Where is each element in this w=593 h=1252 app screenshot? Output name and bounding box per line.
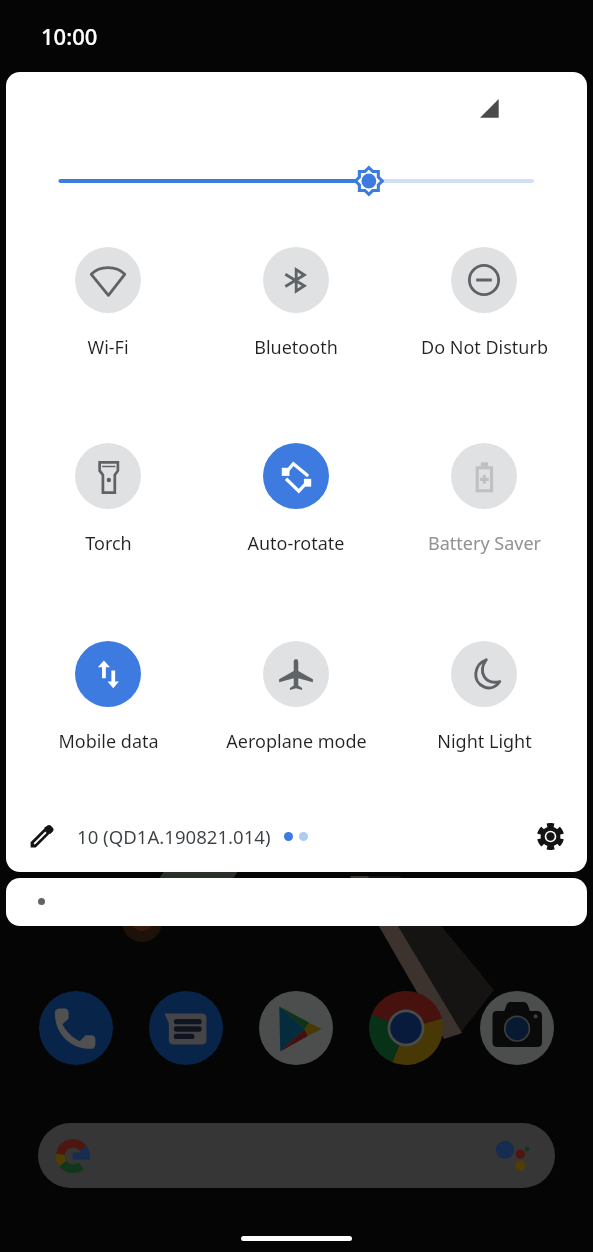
- button[interactable]: Mobile data: [15, 641, 201, 754]
- button[interactable]: Do Not Disturb: [391, 247, 577, 360]
- button[interactable]: [6, 878, 587, 926]
- staticText: Wi-Fi: [87, 335, 129, 360]
- other: Signal strength: [480, 99, 499, 118]
- staticText: Bluetooth: [254, 335, 338, 360]
- button[interactable]: Bluetooth: [203, 247, 389, 360]
- staticText: Battery Saver: [428, 531, 541, 556]
- staticText: Torch: [85, 531, 132, 556]
- button[interactable]: Auto-rotate: [203, 443, 389, 556]
- button[interactable]: Battery Saver: [391, 443, 577, 556]
- button[interactable]: Chrome: [369, 991, 443, 1065]
- button[interactable]: Aeroplane mode: [203, 641, 389, 754]
- staticText: Mobile data: [58, 729, 159, 754]
- staticText: Aeroplane mode: [226, 729, 367, 754]
- button[interactable]: Edit tiles: [20, 814, 64, 858]
- button[interactable]: Torch: [15, 443, 201, 556]
- button[interactable]: Settings: [528, 814, 572, 858]
- staticText: Do Not Disturb: [421, 335, 548, 360]
- button[interactable]: Phone: [39, 991, 113, 1065]
- button[interactable]: Camera: [480, 991, 554, 1065]
- button[interactable]: Messages: [149, 991, 223, 1065]
- staticText: 10 (QD1A.190821.014): [77, 824, 271, 849]
- button[interactable]: Wi-Fi: [15, 247, 201, 360]
- button[interactable]: Night Light: [391, 641, 577, 754]
- button[interactable]: Search: [38, 1123, 555, 1188]
- staticText: Auto-rotate: [247, 531, 345, 556]
- button[interactable]: Brightness: [40, 161, 552, 201]
- staticText: 10:00: [41, 21, 98, 51]
- staticText: Night Light: [437, 729, 532, 754]
- button[interactable]: Play Store: [259, 991, 333, 1065]
